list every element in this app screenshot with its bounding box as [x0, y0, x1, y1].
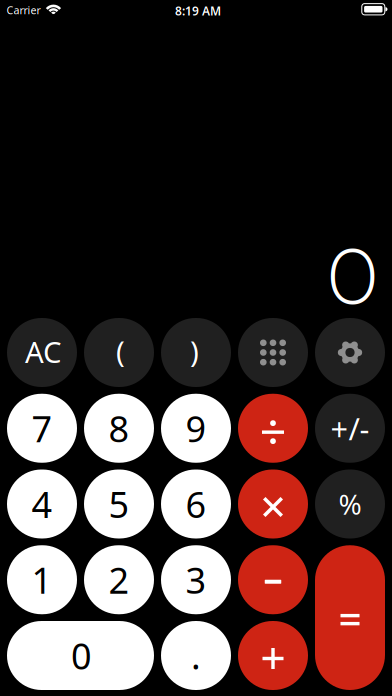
button[interactable]: 6 [161, 469, 231, 538]
staticText: Carrier [7, 3, 41, 17]
button[interactable]: Minus [238, 545, 308, 614]
button[interactable]: . [161, 621, 231, 690]
staticText: +/- [330, 408, 369, 449]
button[interactable]: +/- [315, 394, 385, 463]
button[interactable]: 0 [7, 621, 154, 690]
button[interactable]: 1 [7, 545, 77, 614]
button[interactable]: ) [161, 318, 231, 387]
button[interactable]: 5 [84, 469, 154, 538]
button[interactable]: Multiply [238, 469, 308, 538]
staticText: 9 [185, 404, 206, 452]
staticText: 6 [185, 480, 206, 528]
button[interactable]: 3 [161, 545, 231, 614]
button[interactable]: % [315, 469, 385, 538]
button[interactable]: Keypad [238, 318, 308, 387]
staticText: ( [116, 331, 125, 370]
staticText: 0 [326, 228, 378, 324]
staticText: % [338, 485, 361, 523]
staticText: ) [190, 331, 199, 370]
staticText: AC [25, 332, 62, 371]
staticText: 3 [185, 556, 206, 604]
button[interactable]: AC [7, 318, 77, 387]
staticText: 0 [71, 632, 92, 679]
button[interactable]: Plus [238, 621, 308, 690]
staticText: 1 [31, 556, 52, 604]
button[interactable]: Equals [315, 545, 385, 690]
staticText: 2 [108, 556, 129, 604]
staticText: 5 [108, 480, 129, 528]
button[interactable]: ( [84, 318, 154, 387]
staticText: 4 [31, 480, 52, 528]
staticText: . [191, 632, 201, 679]
button[interactable]: Divide [238, 394, 308, 463]
staticText: 8:19 AM [175, 3, 221, 19]
button[interactable]: 8 [84, 394, 154, 463]
staticText: 8 [108, 404, 129, 452]
button[interactable]: 4 [7, 469, 77, 538]
button[interactable]: 7 [7, 394, 77, 463]
button[interactable]: 9 [161, 394, 231, 463]
staticText: 7 [31, 404, 52, 452]
button[interactable]: 2 [84, 545, 154, 614]
button[interactable]: Settings [315, 318, 385, 387]
